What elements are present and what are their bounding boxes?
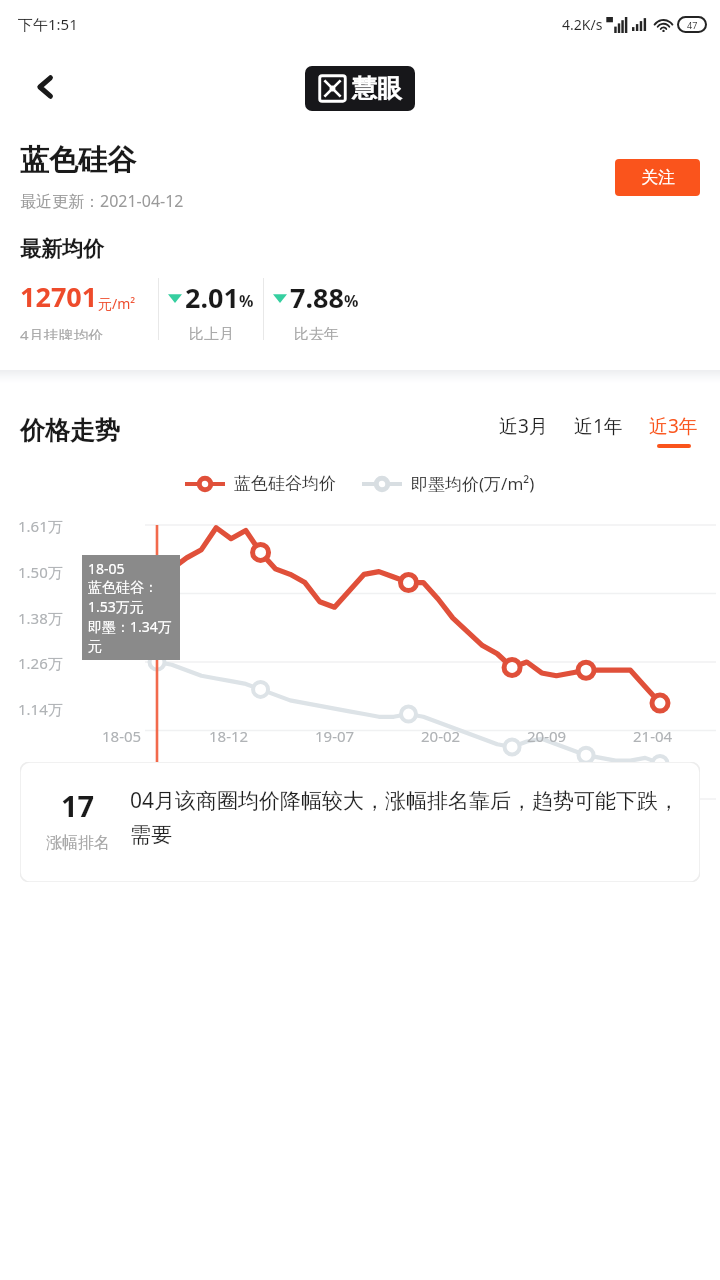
staticText: 1.14万 [18,699,63,719]
button[interactable]: Back [20,61,72,113]
staticText: 蓝色硅谷：1.53万元 [88,579,174,616]
staticText: 1.61万 [18,516,63,536]
staticText: 4月挂牌均价 [20,325,104,340]
staticText: 04月该商圈均价降幅较大，涨幅排名靠后，趋势可能下跌，需要 [130,786,686,849]
staticText: 近3年 [649,413,698,439]
staticText: % [239,290,254,312]
button[interactable]: 近1年 [572,411,625,450]
staticText: 1.50万 [18,562,63,582]
staticText: % [344,290,359,312]
button[interactable]: 关注 [615,159,700,196]
button[interactable]: 近3月 [497,411,550,450]
staticText: 比去年 [294,325,339,340]
staticText: 1.38万 [18,608,63,628]
staticText: 下午1:51 [18,14,78,34]
staticText: 即墨：1.34万元 [88,617,174,655]
staticText: 最近更新：2021-04-12 [20,190,184,212]
staticText: 价格走势 [20,415,120,446]
staticText: 7.88 [290,279,344,316]
staticText: 近3月 [499,413,548,439]
staticText: 蓝色硅谷均价 [234,473,336,494]
staticText: 4.2K/s [562,15,603,34]
staticText: 比上月 [189,325,234,340]
staticText: 17 [61,786,95,825]
staticText: 即墨均价(万/m²) [411,472,535,495]
staticText: 20-09 [527,726,567,746]
staticText: 2.01 [185,279,239,316]
staticText: 47 [687,19,698,31]
staticText: 19-07 [315,726,355,746]
staticText: 涨幅排名 [46,833,110,853]
staticText: 近1年 [574,413,623,439]
staticText: 1.26万 [18,653,63,673]
staticText: 元/m² [98,294,136,313]
staticText: 蓝色硅谷 [20,142,136,179]
staticText: 21-04 [633,726,673,746]
staticText: 20-02 [421,726,461,746]
staticText: 18-05 [88,559,125,578]
staticText: 18-12 [209,726,249,746]
button[interactable]: 近3年 [647,411,700,450]
staticText: 慧眼 [352,73,402,104]
button[interactable]: 17 [20,762,700,882]
staticText: 12701 [20,278,98,315]
staticText: 关注 [641,167,675,188]
staticText: 最新均价 [20,236,104,262]
staticText: 18-05 [102,726,142,746]
